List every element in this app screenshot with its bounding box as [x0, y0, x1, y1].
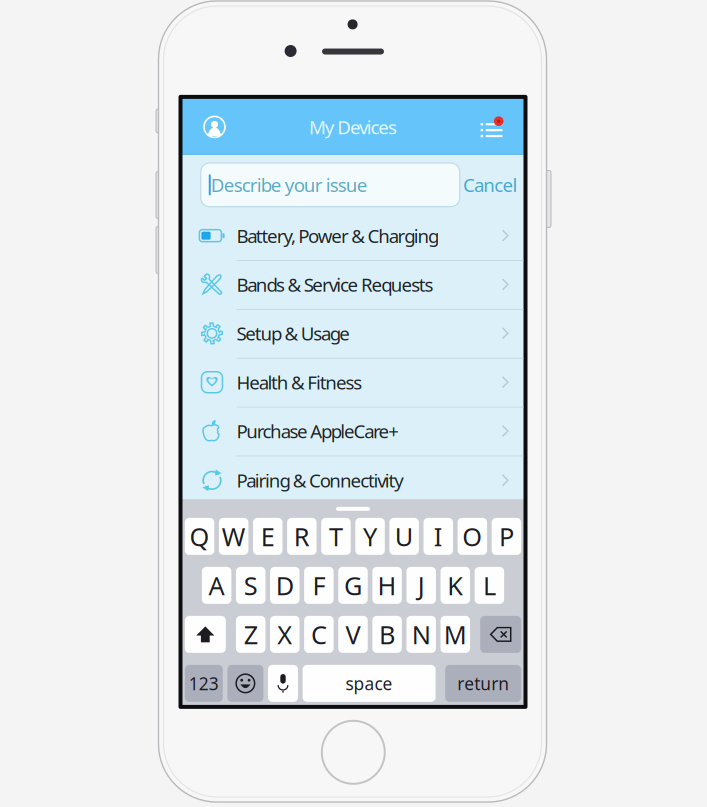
staticText: W — [222, 520, 246, 553]
button[interactable]: Setup & Usage — [182, 309, 523, 358]
staticText: Bands & Service Requests — [236, 272, 433, 297]
button[interactable]: I — [423, 518, 453, 555]
staticText: X — [277, 618, 292, 651]
staticText: P — [499, 520, 514, 553]
button[interactable]: Q — [185, 518, 214, 555]
staticText: N — [412, 618, 431, 651]
staticText: I — [434, 520, 443, 553]
button[interactable]: U — [389, 518, 419, 555]
button[interactable]: J — [406, 567, 436, 604]
button[interactable]: Account — [192, 105, 236, 149]
staticText: E — [261, 520, 275, 553]
staticText: Y — [363, 520, 377, 553]
staticText: O — [462, 520, 482, 553]
button[interactable]: Delete — [480, 616, 521, 653]
button[interactable]: return — [445, 665, 521, 702]
staticText: Health & Fitness — [236, 370, 362, 395]
button[interactable]: S — [236, 567, 265, 604]
staticText: B — [379, 618, 395, 651]
button[interactable]: X — [270, 616, 300, 653]
button[interactable]: Bands & Service Requests — [182, 260, 523, 309]
button[interactable]: G — [338, 567, 368, 604]
button[interactable]: H — [372, 567, 402, 604]
button[interactable]: Y — [355, 518, 385, 555]
staticText: T — [329, 520, 343, 553]
button[interactable]: L — [475, 567, 504, 604]
button[interactable]: Emoji — [227, 665, 263, 702]
staticText: M — [444, 618, 467, 651]
staticText: Cancel — [463, 172, 517, 197]
button[interactable]: D — [270, 567, 300, 604]
button[interactable]: 123 — [185, 665, 223, 702]
staticText: Battery, Power & Charging — [236, 223, 439, 248]
staticText: return — [457, 672, 509, 695]
button[interactable]: P — [492, 518, 521, 555]
button[interactable]: Z — [236, 616, 265, 653]
staticText: Q — [190, 520, 210, 553]
button[interactable]: C — [304, 616, 334, 653]
button[interactable]: Notifications — [471, 105, 515, 149]
staticText: K — [447, 569, 463, 602]
staticText: U — [395, 520, 414, 553]
button[interactable]: E — [253, 518, 282, 555]
button[interactable]: O — [458, 518, 487, 555]
staticText: My Devices — [309, 114, 397, 139]
staticText: L — [483, 569, 496, 602]
button[interactable]: W — [219, 518, 248, 555]
staticText: Setup & Usage — [236, 321, 350, 346]
button[interactable]: A — [202, 567, 231, 604]
staticText: J — [418, 569, 425, 602]
staticText: G — [344, 569, 362, 602]
staticText: R — [294, 520, 310, 553]
button[interactable]: Cancel — [460, 163, 521, 207]
staticText: H — [378, 569, 397, 602]
staticText: Describe your issue — [211, 172, 368, 197]
button[interactable]: R — [287, 518, 317, 555]
staticText: 123 — [189, 672, 219, 695]
button[interactable]: Purchase AppleCare+ — [182, 407, 523, 456]
button[interactable]: B — [372, 616, 402, 653]
staticText: A — [209, 569, 225, 602]
button[interactable]: Battery, Power & Charging — [182, 212, 523, 261]
button[interactable]: Health & Fitness — [182, 358, 523, 407]
button[interactable]: F — [304, 567, 334, 604]
staticText: C — [311, 618, 327, 651]
button[interactable]: Pairing & Connectivity — [182, 456, 523, 505]
staticText: Purchase AppleCare+ — [236, 419, 399, 443]
staticText: space — [346, 672, 393, 695]
button[interactable]: N — [406, 616, 436, 653]
staticText: S — [244, 569, 258, 602]
button[interactable]: K — [440, 567, 470, 604]
staticText: Z — [244, 618, 258, 651]
staticText: V — [345, 618, 360, 651]
button[interactable]: T — [321, 518, 351, 555]
button[interactable]: Dictation — [268, 665, 298, 702]
button[interactable]: M — [440, 616, 470, 653]
staticText: Pairing & Connectivity — [236, 468, 404, 493]
staticText: D — [276, 569, 294, 602]
button[interactable]: space — [303, 665, 436, 702]
button[interactable]: V — [338, 616, 368, 653]
staticText: F — [312, 569, 325, 602]
button[interactable]: Shift — [185, 616, 226, 653]
